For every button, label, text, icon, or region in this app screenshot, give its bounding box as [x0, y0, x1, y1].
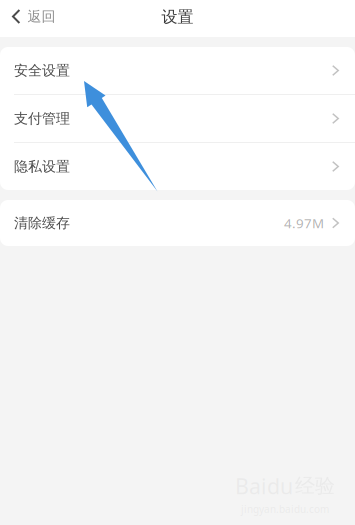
- button[interactable]: 返回: [0, 0, 67, 37]
- staticText: 4.97M: [284, 214, 324, 232]
- button[interactable]: 隐私设置: [0, 143, 355, 190]
- staticText: Baidu: [235, 471, 293, 500]
- staticText: 隐私设置: [14, 158, 70, 175]
- staticText: 支付管理: [14, 110, 70, 127]
- staticText: 设置: [161, 7, 193, 27]
- button[interactable]: 安全设置: [0, 47, 355, 94]
- staticText: 经验: [295, 473, 335, 498]
- staticText: 返回: [27, 8, 55, 25]
- button[interactable]: 支付管理: [0, 95, 355, 142]
- staticText: 安全设置: [14, 62, 70, 79]
- staticText: 清除缓存: [14, 214, 70, 232]
- button[interactable]: 清除缓存: [0, 200, 355, 246]
